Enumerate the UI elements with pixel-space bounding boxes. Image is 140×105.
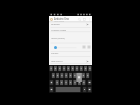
staticText: Command (51, 23, 60, 25)
button[interactable]: Bookmark (82, 16, 87, 22)
staticText: Nano Shield (54, 20, 65, 22)
staticText: AT+Battery Charged (51, 29, 66, 31)
button[interactable]: Increase (87, 45, 91, 49)
button[interactable]: Search (77, 16, 82, 22)
button[interactable]: Timeout slider (54, 46, 57, 49)
button[interactable]: More options (87, 16, 92, 22)
staticText: Show Output in (51, 60, 63, 62)
button[interactable]: Choose output (86, 60, 89, 63)
button[interactable]: Decrease (82, 45, 86, 49)
staticText: Arduino Uno (54, 17, 70, 20)
staticText: Timeout (Seconds) (51, 37, 65, 39)
button[interactable]: Keyboard (49, 65, 92, 93)
button[interactable]: Send (86, 23, 89, 26)
staticText: Line Feed (51, 52, 59, 54)
